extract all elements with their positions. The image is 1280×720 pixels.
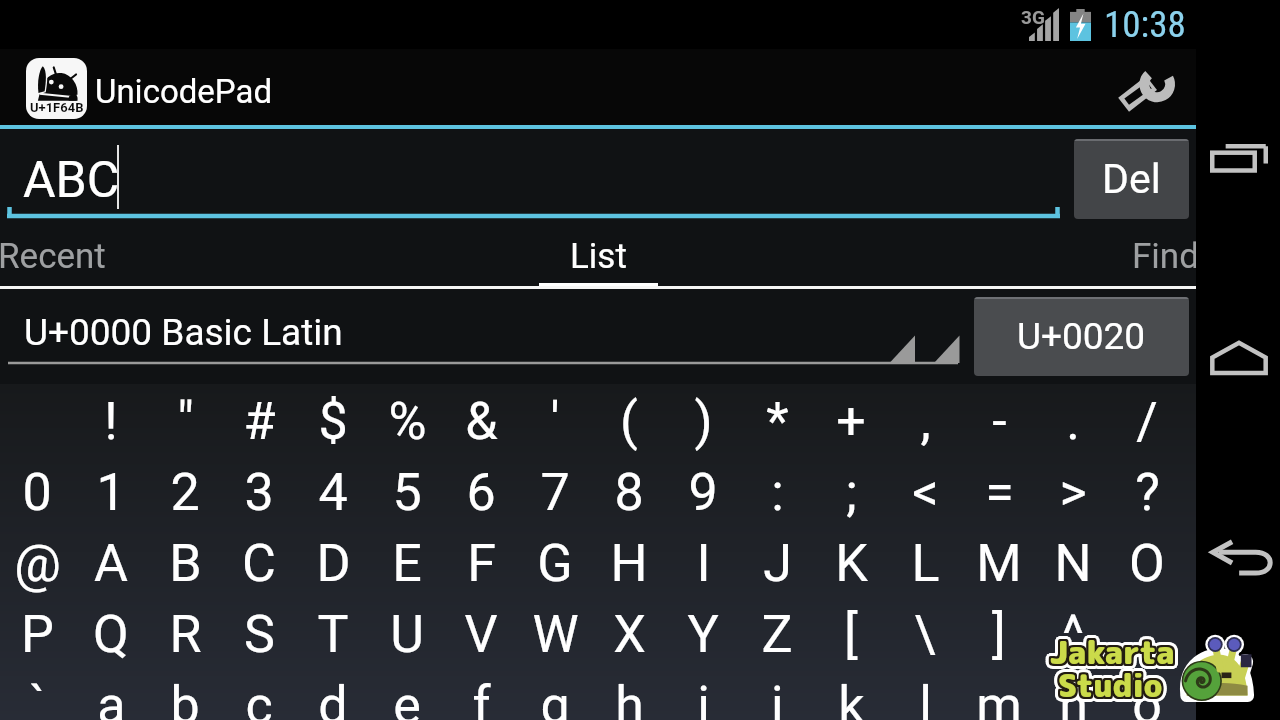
- button[interactable]: h: [592, 670, 666, 720]
- button[interactable]: b: [148, 670, 222, 720]
- button[interactable]: Recent: [0, 222, 300, 291]
- button[interactable]: k: [814, 670, 888, 720]
- button[interactable]: -: [962, 386, 1036, 457]
- button[interactable]: ?: [1110, 457, 1184, 528]
- button[interactable]: \: [888, 599, 962, 670]
- button[interactable]: ^: [1036, 599, 1110, 670]
- button[interactable]: `: [0, 670, 74, 720]
- button[interactable]: X: [592, 599, 666, 670]
- button[interactable]: (: [592, 386, 666, 457]
- button[interactable]: U+0000 Basic Latin: [0, 291, 962, 384]
- button[interactable]: G: [518, 528, 592, 599]
- button[interactable]: 0: [0, 457, 74, 528]
- button[interactable]: ): [666, 386, 740, 457]
- button[interactable]: Del: [1074, 139, 1189, 219]
- staticText: Jakarta: [1046, 627, 1171, 670]
- button[interactable]: ,: [888, 386, 962, 457]
- button[interactable]: K: [814, 528, 888, 599]
- button[interactable]: j: [740, 670, 814, 720]
- button[interactable]: V: [444, 599, 518, 670]
- button[interactable]: e: [370, 670, 444, 720]
- staticText: B: [169, 533, 202, 594]
- button[interactable]: A: [74, 528, 148, 599]
- button[interactable]: Back: [1196, 523, 1280, 593]
- button[interactable]: !: [74, 386, 148, 457]
- button[interactable]: ;: [814, 457, 888, 528]
- button[interactable]: m: [962, 670, 1036, 720]
- button[interactable]: .: [1036, 386, 1110, 457]
- button[interactable]: L: [888, 528, 962, 599]
- button[interactable]: >: [1036, 457, 1110, 528]
- button[interactable]: Y: [666, 599, 740, 670]
- button[interactable]: Home: [1196, 322, 1280, 392]
- button[interactable]: ]: [962, 599, 1036, 670]
- button[interactable]: W: [518, 599, 592, 670]
- button[interactable]: =: [962, 457, 1036, 528]
- button[interactable]: M: [962, 528, 1036, 599]
- button[interactable]: N: [1036, 528, 1110, 599]
- button[interactable]: P: [0, 599, 74, 670]
- button[interactable]: c: [222, 670, 296, 720]
- button[interactable]: @: [0, 528, 74, 599]
- button[interactable]: F: [444, 528, 518, 599]
- button[interactable]: /: [1110, 386, 1184, 457]
- button[interactable]: 6: [444, 457, 518, 528]
- button[interactable]: E: [370, 528, 444, 599]
- button[interactable]: o: [1110, 670, 1184, 720]
- button[interactable]: Recent apps: [1196, 124, 1280, 194]
- button[interactable]: Z: [740, 599, 814, 670]
- staticText: Jakarta: [1055, 631, 1180, 674]
- button[interactable]: ": [148, 386, 222, 457]
- button[interactable]: C: [222, 528, 296, 599]
- staticText: 8: [614, 462, 644, 523]
- staticText: U+0000 Basic Latin: [24, 311, 343, 354]
- button[interactable]: [: [814, 599, 888, 670]
- button[interactable]: 4: [296, 457, 370, 528]
- staticText: Y: [687, 604, 719, 665]
- button[interactable]: <: [888, 457, 962, 528]
- staticText: M: [976, 533, 1022, 594]
- button[interactable]: Settings: [1096, 49, 1196, 126]
- button[interactable]: R: [148, 599, 222, 670]
- button[interactable]: T: [296, 599, 370, 670]
- button[interactable]: I: [666, 528, 740, 599]
- button[interactable]: ': [518, 386, 592, 457]
- button[interactable]: +: [814, 386, 888, 457]
- button[interactable]: l: [888, 670, 962, 720]
- button[interactable]: i: [666, 670, 740, 720]
- button[interactable]: #: [222, 386, 296, 457]
- button[interactable]: 3: [222, 457, 296, 528]
- button[interactable]: a: [74, 670, 148, 720]
- button[interactable]: f: [444, 670, 518, 720]
- button[interactable]: g: [518, 670, 592, 720]
- button[interactable]: S: [222, 599, 296, 670]
- button[interactable]: 2: [148, 457, 222, 528]
- button[interactable]: Q: [74, 599, 148, 670]
- staticText: Jakarta: [1048, 636, 1173, 679]
- button[interactable]: _: [1110, 599, 1184, 670]
- button[interactable]: 1: [74, 457, 148, 528]
- button[interactable]: %: [370, 386, 444, 457]
- button[interactable]: d: [296, 670, 370, 720]
- button[interactable]: J: [740, 528, 814, 599]
- button[interactable]: 5: [370, 457, 444, 528]
- button[interactable]: Find: [896, 222, 1196, 291]
- button[interactable]: List: [508, 222, 688, 291]
- button[interactable]: B: [148, 528, 222, 599]
- button[interactable]: &: [444, 386, 518, 457]
- staticText: n: [1059, 675, 1088, 720]
- button[interactable]: *: [740, 386, 814, 457]
- button[interactable]: 9: [666, 457, 740, 528]
- button[interactable]: :: [740, 457, 814, 528]
- button[interactable]: U: [370, 599, 444, 670]
- button[interactable]: UnicodePad: [26, 58, 87, 119]
- button[interactable]: 7: [518, 457, 592, 528]
- button[interactable]: n: [1036, 670, 1110, 720]
- button[interactable]: O: [1110, 528, 1184, 599]
- button[interactable]: D: [296, 528, 370, 599]
- button[interactable]: $: [296, 386, 370, 457]
- button[interactable]: H: [592, 528, 666, 599]
- button[interactable]: 8: [592, 457, 666, 528]
- button[interactable]: U+0020: [974, 297, 1189, 376]
